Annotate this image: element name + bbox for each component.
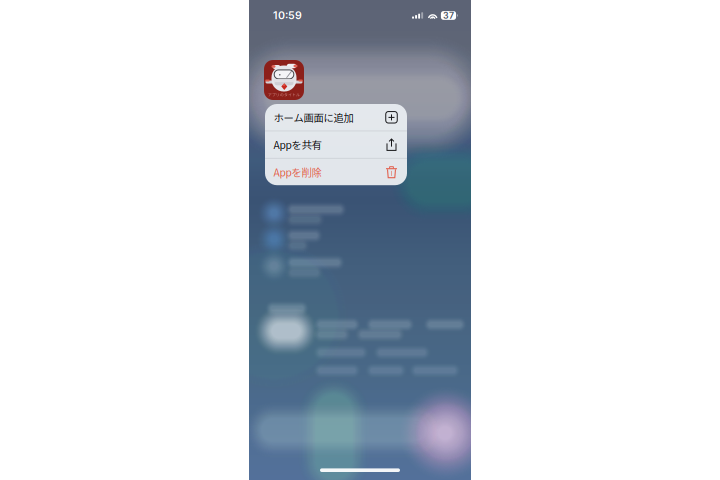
button[interactable]: App icon bbox=[264, 60, 304, 100]
button[interactable]: ホーム画面に追加 bbox=[265, 104, 407, 131]
button[interactable]: Appを共有 bbox=[265, 131, 407, 158]
staticText: アプリのタイトル bbox=[268, 92, 300, 97]
button[interactable]: Appを削除 bbox=[265, 159, 407, 185]
staticText: Appを削除 bbox=[273, 164, 321, 179]
staticText: ホーム画面に追加 bbox=[273, 110, 353, 125]
staticText: Appを共有 bbox=[273, 137, 321, 152]
staticText: 37 bbox=[443, 10, 454, 21]
staticText: 10:59 bbox=[273, 9, 302, 22]
